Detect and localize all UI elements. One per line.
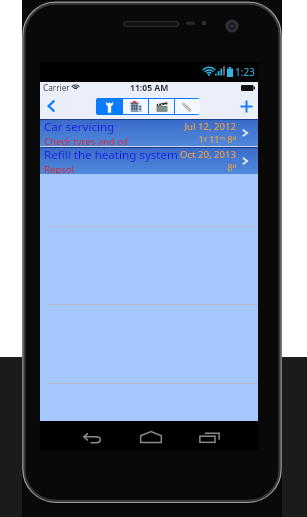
button[interactable]: Back bbox=[40, 93, 62, 119]
staticText: 11:05 AM bbox=[130, 82, 169, 93]
button[interactable]: Category bbox=[123, 99, 148, 114]
staticText: Jul 12, 2012 bbox=[184, 120, 236, 133]
button[interactable]: Recent apps bbox=[180, 422, 239, 452]
button[interactable]: Service bbox=[96, 98, 122, 115]
staticText: Check tyres and oil bbox=[44, 135, 128, 146]
button[interactable]: Refill the heating system bbox=[40, 147, 258, 174]
staticText: Car servicing bbox=[44, 119, 115, 135]
button[interactable]: Car servicing bbox=[40, 119, 258, 146]
button[interactable]: Category bbox=[149, 99, 174, 114]
button[interactable]: Back bbox=[63, 422, 121, 452]
staticText: Oct 20, 2013 bbox=[179, 148, 236, 161]
staticText: Refill the heating system bbox=[44, 147, 178, 163]
button[interactable]: Home bbox=[121, 422, 180, 452]
staticText: 1ʸ 11ᵐ 8ᵈ bbox=[198, 133, 236, 145]
button[interactable]: Category bbox=[175, 99, 200, 114]
staticText: Carrier bbox=[43, 82, 70, 93]
staticText: Repsol bbox=[44, 163, 74, 174]
staticText: 1:23 bbox=[235, 65, 255, 79]
button[interactable]: Add bbox=[234, 93, 258, 119]
staticText: 8ᵈ bbox=[227, 161, 236, 173]
